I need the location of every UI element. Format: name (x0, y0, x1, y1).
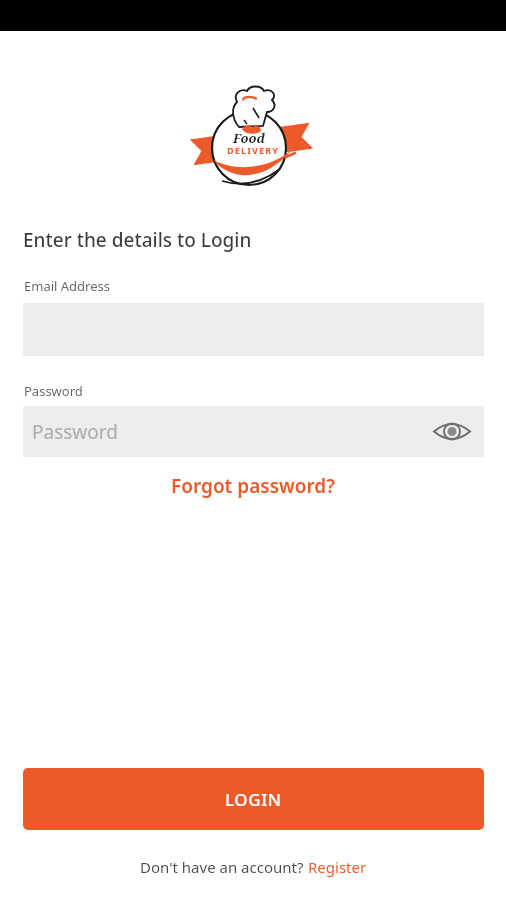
staticText: Enter the details to Login (23, 227, 252, 253)
button[interactable]: Password (23, 406, 484, 457)
staticText: Food (233, 129, 266, 147)
staticText: Don't have an account? (140, 857, 308, 877)
staticText: Email Address (24, 277, 110, 295)
staticText: Register (308, 857, 367, 877)
staticText: Password (24, 382, 83, 400)
staticText: DELIVERY (227, 144, 280, 156)
button[interactable]: Forgot password? (0, 473, 506, 499)
staticText: Password (32, 419, 118, 445)
staticText: LOGIN (225, 788, 282, 811)
button[interactable]: LOGIN (23, 768, 484, 830)
button[interactable]: Don't have an account? (0, 857, 506, 877)
